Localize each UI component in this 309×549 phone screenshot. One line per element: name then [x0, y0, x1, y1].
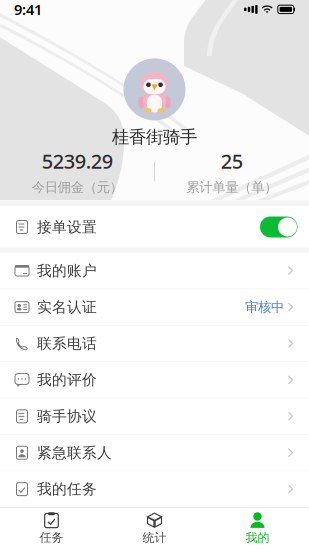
- staticText: 我的账户: [37, 262, 97, 280]
- button[interactable]: 紧急联系人: [0, 435, 309, 471]
- button[interactable]: 我的任务: [0, 471, 309, 508]
- button[interactable]: 实名认证: [0, 289, 309, 326]
- staticText: 骑手协议: [37, 407, 97, 425]
- staticText: 我的评价: [37, 371, 97, 389]
- staticText: 实名认证: [37, 298, 97, 316]
- button[interactable]: 任务: [0, 508, 103, 549]
- button[interactable]: 我的账户: [0, 253, 309, 289]
- staticText: 任务: [39, 530, 63, 545]
- staticText: 审核中: [245, 299, 284, 315]
- staticText: 联系电话: [37, 334, 97, 352]
- button[interactable]: 骑手协议: [0, 398, 309, 435]
- staticText: 25: [221, 148, 243, 174]
- staticText: 5239.29: [42, 148, 113, 174]
- button[interactable]: 我的: [206, 508, 309, 549]
- staticText: 紧急联系人: [37, 444, 112, 462]
- staticText: 9:41: [14, 0, 42, 19]
- button[interactable]: 统计: [103, 508, 206, 549]
- staticText: 我的任务: [37, 480, 97, 498]
- button[interactable]: 联系电话: [0, 326, 309, 362]
- staticText: 接单设置: [37, 218, 97, 236]
- button[interactable]: 接单设置开关: [260, 216, 297, 237]
- staticText: 累计单量（单）: [186, 179, 277, 196]
- staticText: 桂香街骑手: [112, 126, 197, 148]
- staticText: 今日佣金（元）: [32, 179, 123, 196]
- staticText: 统计: [142, 530, 166, 545]
- button[interactable]: 我的评价: [0, 362, 309, 398]
- staticText: 我的: [245, 530, 269, 545]
